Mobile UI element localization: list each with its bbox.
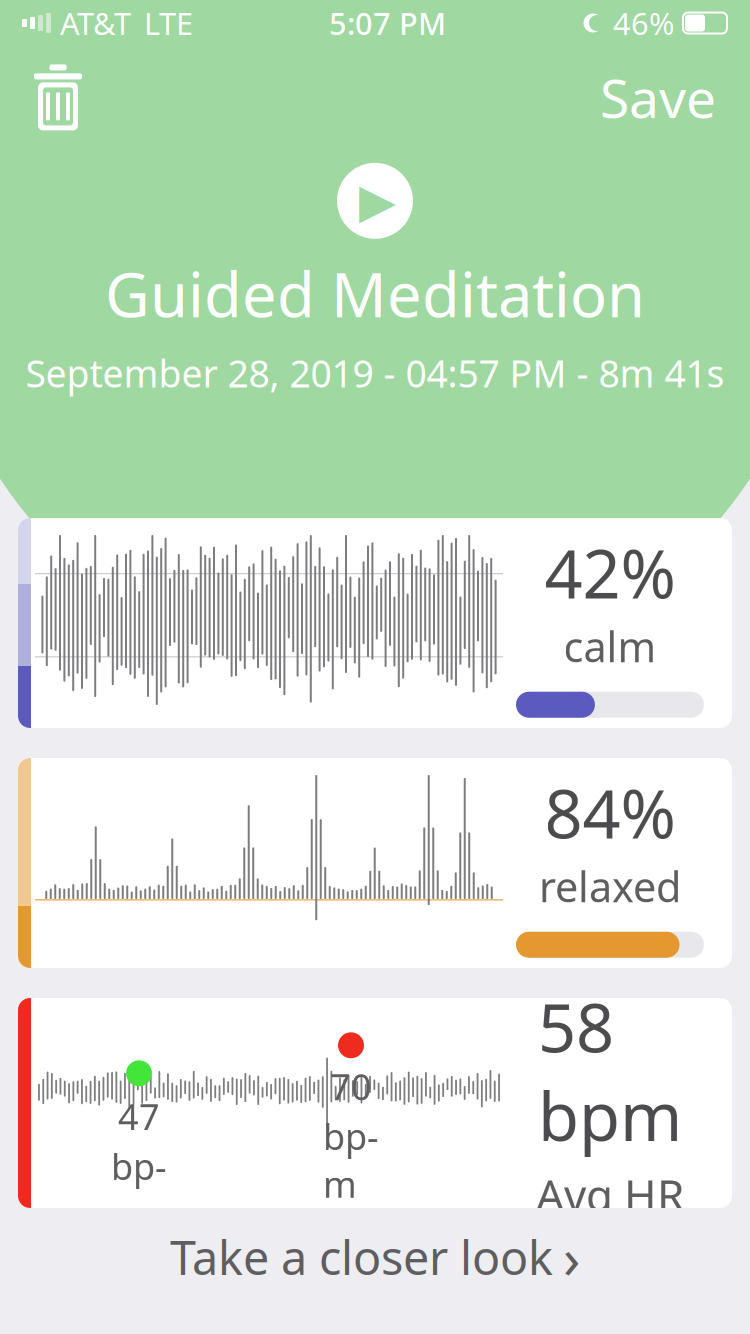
staticText: 70 (330, 1062, 372, 1110)
button[interactable]: Take a closer look (18, 1226, 732, 1288)
staticText: AT&T (60, 3, 131, 43)
staticText: September 28, 2019 - 04:57 PM - 8m 41s (25, 348, 724, 398)
staticText: bpm (111, 1142, 167, 1238)
button[interactable]: 84% (18, 758, 732, 968)
staticText: LTE (144, 3, 193, 43)
staticText: Avg HR (536, 1165, 684, 1224)
staticText: relaxed (539, 859, 681, 914)
button[interactable]: 42% (18, 518, 732, 728)
staticText: bpm (323, 1112, 379, 1208)
button[interactable]: Save (580, 54, 736, 141)
staticText: ▶ (359, 174, 396, 228)
staticText: 58 bpm (538, 982, 682, 1159)
staticText: calm (563, 619, 656, 674)
staticText: 47 (118, 1092, 160, 1140)
staticText: Save (600, 62, 716, 133)
staticText: Guided Meditation (105, 253, 645, 334)
staticText: 5:07 PM (329, 3, 446, 43)
staticText: 46% (613, 3, 674, 43)
button[interactable]: 47 (18, 998, 732, 1208)
staticText: 42% (544, 528, 675, 617)
staticText: Take a closer look (170, 1226, 553, 1288)
staticText: › (563, 1220, 580, 1294)
button[interactable]: Delete session (14, 55, 102, 139)
staticText: 84% (544, 768, 675, 857)
